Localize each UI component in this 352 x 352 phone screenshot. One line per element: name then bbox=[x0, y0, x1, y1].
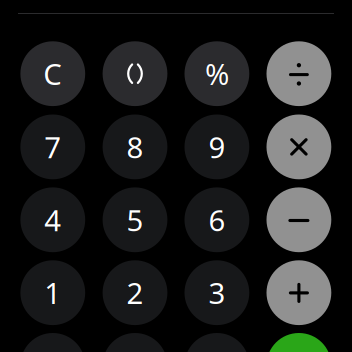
button[interactable]: Multiply bbox=[266, 114, 331, 179]
staticText: C bbox=[43, 54, 62, 93]
button[interactable]: 2 bbox=[103, 260, 167, 325]
staticText: 4 bbox=[44, 200, 61, 239]
staticText: 5 bbox=[126, 200, 143, 239]
button[interactable]: 8 bbox=[103, 114, 167, 179]
button[interactable]: Delete bbox=[184, 333, 249, 352]
button[interactable]: 4 bbox=[20, 187, 85, 252]
staticText: 1 bbox=[44, 273, 61, 312]
button[interactable]: Clear bbox=[20, 41, 85, 106]
button[interactable]: Equals bbox=[266, 333, 331, 352]
button[interactable]: 7 bbox=[20, 114, 85, 179]
button[interactable]: 1 bbox=[20, 260, 85, 325]
button[interactable]: 0 bbox=[103, 333, 167, 352]
button[interactable]: Divide bbox=[266, 41, 331, 106]
button[interactable]: 3 bbox=[184, 260, 249, 325]
button[interactable]: Add bbox=[266, 260, 331, 325]
staticText: 3 bbox=[208, 273, 225, 312]
button[interactable]: 6 bbox=[184, 187, 249, 252]
staticText: 9 bbox=[208, 127, 225, 166]
button[interactable]: 9 bbox=[184, 114, 249, 179]
button[interactable]: Percent bbox=[184, 41, 249, 106]
staticText: 2 bbox=[126, 273, 143, 312]
staticText: 7 bbox=[44, 127, 61, 166]
button[interactable]: Parentheses bbox=[103, 41, 167, 106]
button[interactable]: Subtract bbox=[266, 187, 331, 252]
staticText: % bbox=[205, 54, 229, 93]
staticText: 6 bbox=[208, 200, 225, 239]
button[interactable]: 5 bbox=[103, 187, 167, 252]
staticText: 8 bbox=[126, 127, 143, 166]
button[interactable]: Decimal point bbox=[20, 333, 85, 352]
